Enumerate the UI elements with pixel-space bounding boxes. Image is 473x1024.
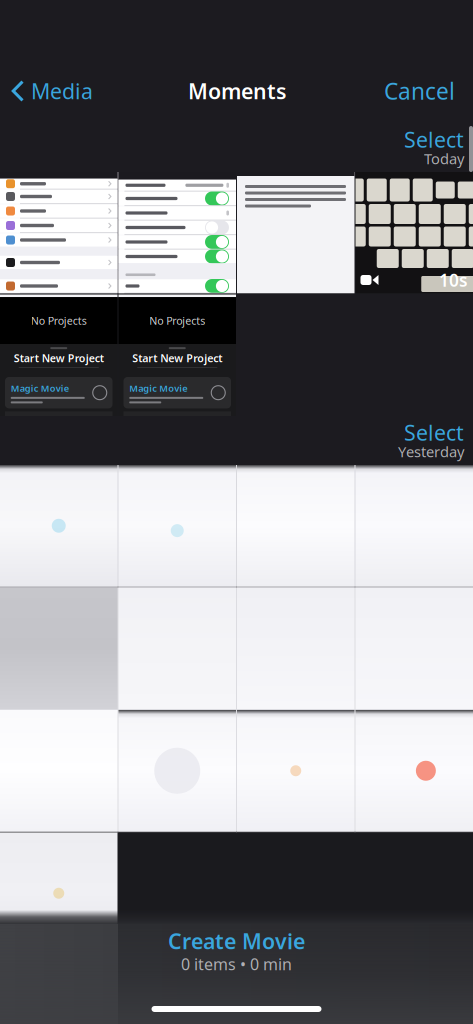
staticText: Yesterday xyxy=(398,442,464,461)
staticText: Moments xyxy=(188,77,287,105)
button[interactable]: Cancel xyxy=(374,69,473,113)
staticText: Magic Movie xyxy=(129,382,187,394)
staticText: Magic Movie xyxy=(11,382,69,394)
staticText: 10s xyxy=(439,268,468,291)
staticText: Select xyxy=(404,418,464,447)
staticText: No Projects xyxy=(31,313,87,328)
staticText: Cancel xyxy=(384,76,455,106)
staticText: Select xyxy=(404,125,464,154)
button[interactable]: Media xyxy=(0,69,101,113)
staticText: No Projects xyxy=(149,313,205,328)
button[interactable]: Create Movie xyxy=(168,928,305,954)
staticText: 0 items • 0 min xyxy=(181,953,292,975)
button[interactable]: Select xyxy=(404,129,464,150)
staticText: Media xyxy=(31,77,93,105)
staticText: Start New Project xyxy=(132,351,222,365)
staticText: Today xyxy=(424,149,464,168)
button[interactable]: Select xyxy=(404,422,464,443)
staticText: Create Movie xyxy=(168,927,305,955)
staticText: Start New Project xyxy=(14,351,104,365)
